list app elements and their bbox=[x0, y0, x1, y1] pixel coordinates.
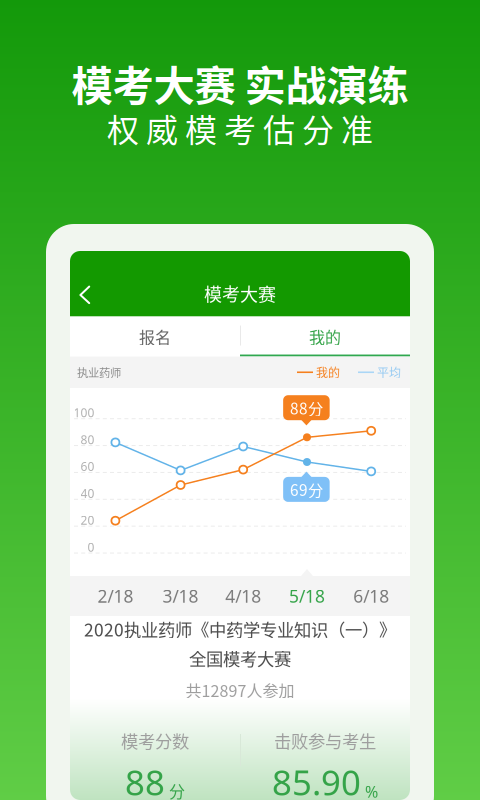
staticText: 5/18 bbox=[289, 584, 325, 607]
staticText: 88分 bbox=[290, 397, 323, 419]
staticText: 2/18 bbox=[97, 584, 133, 607]
staticText: 模考大赛 实战演练 bbox=[71, 53, 408, 113]
staticText: 3/18 bbox=[163, 584, 199, 607]
staticText: 2020执业药师《中药学专业知识（一）》 bbox=[84, 616, 396, 641]
staticText: % bbox=[365, 781, 378, 800]
staticText: 0 bbox=[87, 539, 94, 555]
staticText: 40 bbox=[80, 485, 94, 501]
staticText: 权 威 模 考 估 分 准 bbox=[107, 105, 373, 151]
staticText: 模考大赛 bbox=[204, 280, 276, 307]
staticText: 85.90 bbox=[272, 759, 361, 800]
button[interactable]: 我的 bbox=[240, 316, 410, 356]
staticText: 击败参与考生 bbox=[274, 728, 376, 753]
staticText: 我的 bbox=[309, 325, 341, 348]
staticText: 模考分数 bbox=[121, 728, 189, 753]
staticText: 共12897人参加 bbox=[185, 678, 294, 702]
staticText: 全国模考大赛 bbox=[189, 645, 291, 670]
staticText: 80 bbox=[80, 432, 94, 447]
staticText: 20 bbox=[80, 512, 94, 528]
staticText: 100 bbox=[73, 405, 94, 421]
staticText: 6/18 bbox=[353, 584, 389, 607]
staticText: 60 bbox=[80, 458, 94, 474]
button[interactable]: 报名 bbox=[70, 316, 240, 356]
staticText: 69分 bbox=[290, 478, 323, 500]
staticText: 报名 bbox=[139, 325, 171, 348]
staticText: 执业药师 bbox=[77, 364, 121, 380]
staticText: 88 bbox=[125, 759, 165, 800]
staticText: 我的 bbox=[316, 364, 340, 381]
button[interactable]: Back bbox=[70, 271, 108, 316]
staticText: 平均 bbox=[377, 364, 401, 381]
staticText: 4/18 bbox=[225, 584, 261, 607]
staticText: 分 bbox=[169, 779, 185, 800]
